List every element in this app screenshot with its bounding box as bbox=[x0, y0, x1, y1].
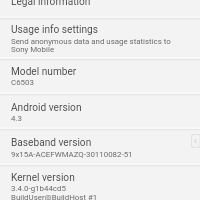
staticText: Sony Mobile bbox=[11, 45, 55, 54]
button[interactable] bbox=[0, 19, 200, 59]
button[interactable] bbox=[0, 0, 200, 18]
button[interactable] bbox=[0, 60, 200, 94]
staticText: Send anonymous data and usage statistics… bbox=[11, 37, 171, 46]
button[interactable] bbox=[0, 95, 200, 130]
staticText: BuildUser@BuildHost #1 bbox=[11, 193, 98, 200]
staticText: C6503 bbox=[11, 78, 34, 87]
staticText: 4.3 bbox=[11, 114, 22, 123]
staticText: 3.4.0-g1b44cd5 bbox=[11, 184, 66, 193]
staticText: Android version bbox=[11, 102, 82, 114]
staticText: Usage info settings bbox=[11, 24, 99, 36]
button[interactable] bbox=[0, 131, 200, 165]
button[interactable]: Fast scroll bbox=[189, 133, 200, 149]
staticText: Baseband version bbox=[11, 137, 92, 149]
staticText: Legal information bbox=[11, 0, 91, 8]
staticText: 9x15A-ACEFWMAZQ-30110082-51 bbox=[11, 150, 133, 159]
staticText: Kernel version bbox=[11, 172, 75, 184]
button[interactable] bbox=[0, 166, 200, 200]
staticText: Model number bbox=[11, 66, 77, 78]
